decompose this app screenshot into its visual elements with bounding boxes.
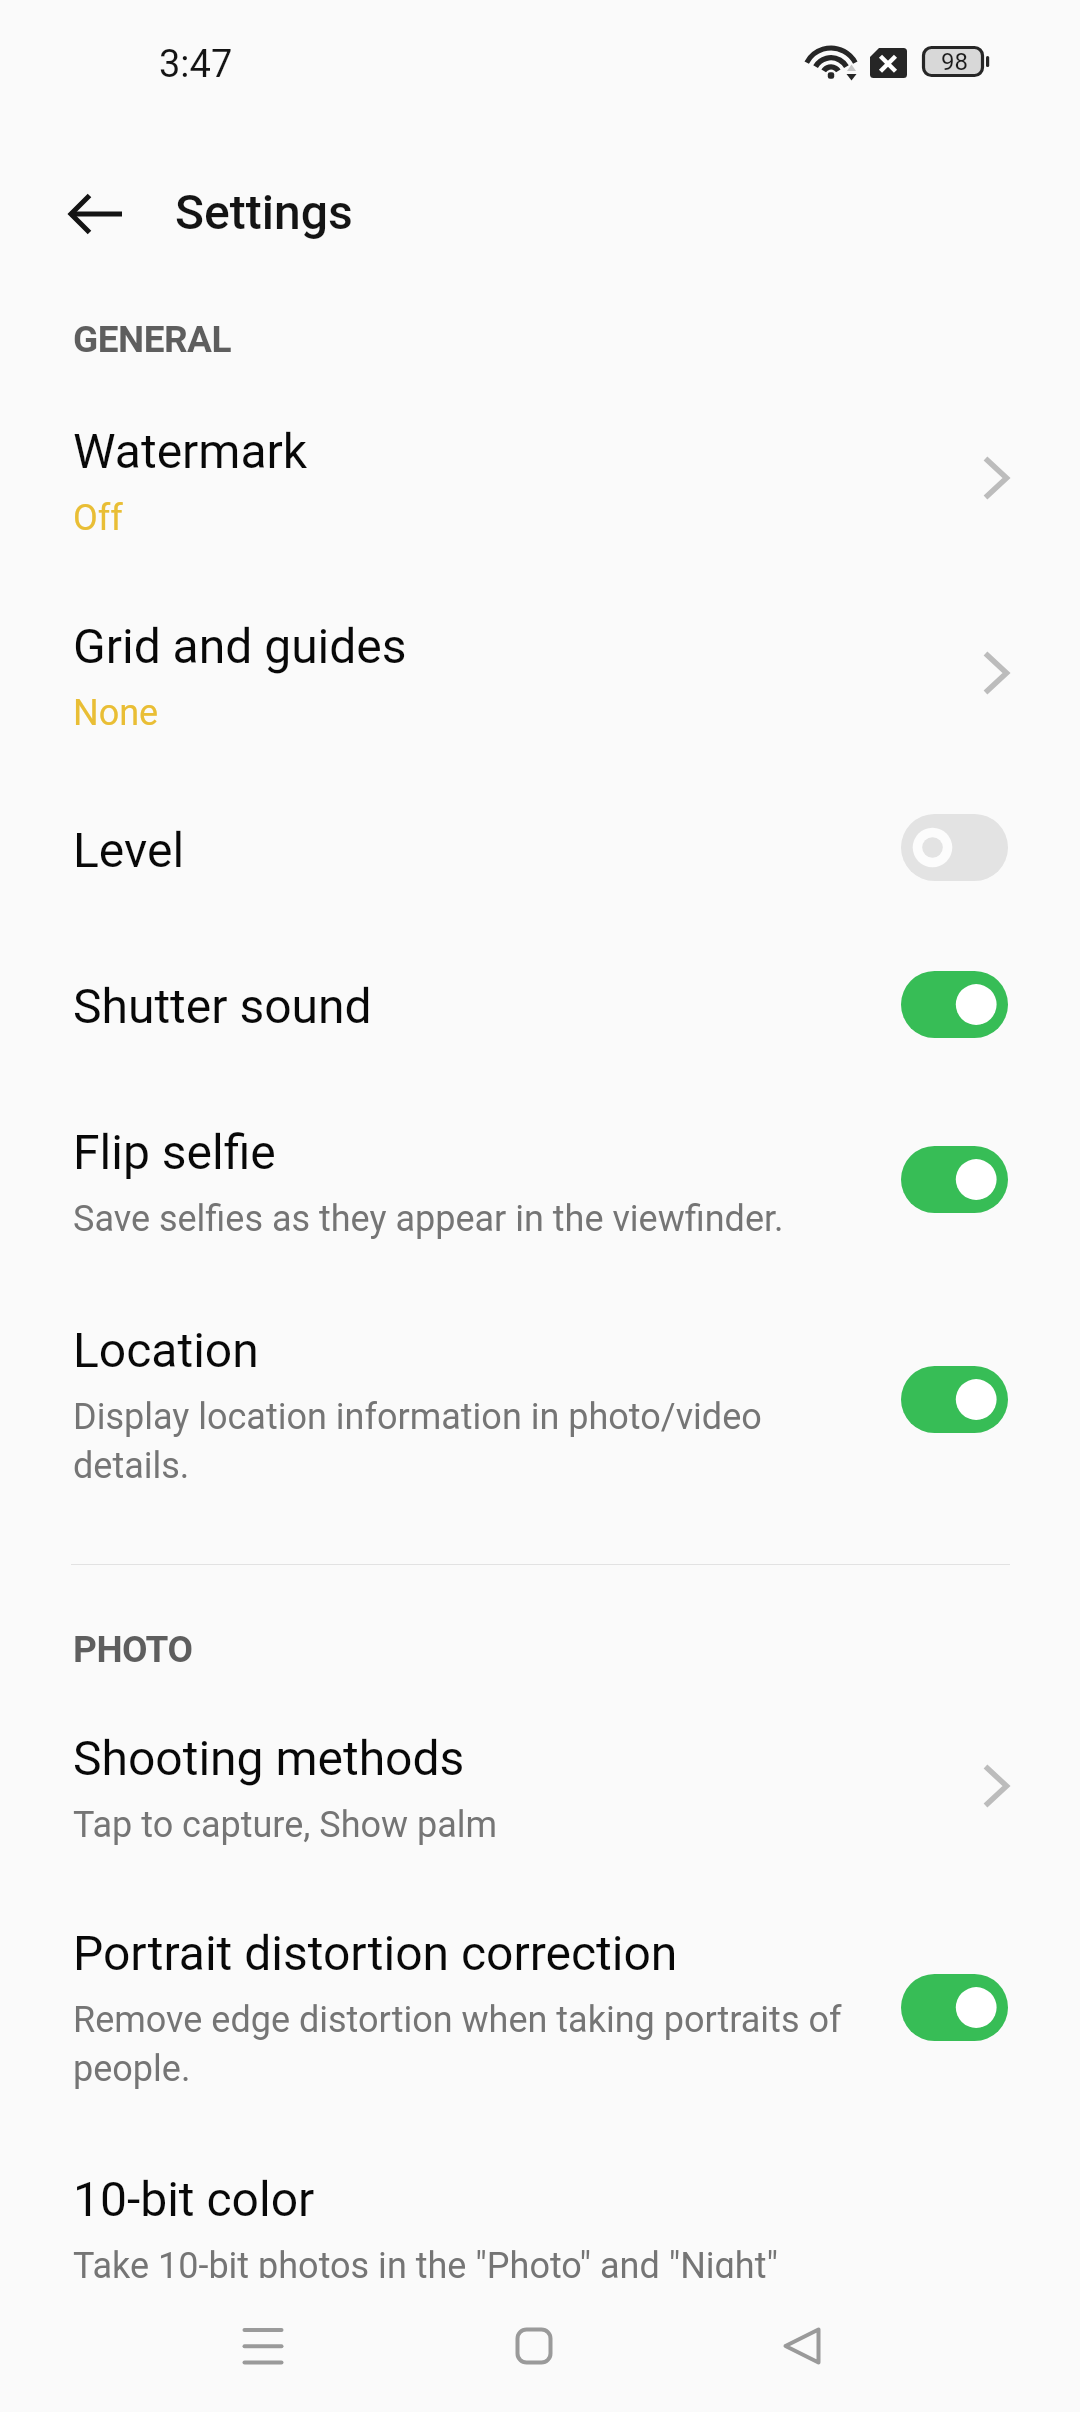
staticText: Portrait distortion correction (73, 1925, 678, 1981)
staticText: 10-bit color (73, 2171, 315, 2227)
button[interactable]: Open (966, 643, 1026, 703)
button[interactable]: On (901, 1974, 1008, 2041)
button[interactable]: Recents (203, 2296, 323, 2396)
staticText: Watermark (73, 423, 308, 479)
staticText: Off (73, 491, 123, 540)
button[interactable]: Home (474, 2296, 594, 2396)
button[interactable]: Level (0, 786, 1080, 898)
staticText: 98 (941, 48, 968, 76)
staticText: Take 10-bit photos in the "Photo" and "N… (73, 2239, 778, 2278)
button[interactable]: Grid and guides (0, 582, 1080, 740)
button[interactable]: Watermark (0, 387, 1080, 545)
staticText: Tap to capture, Show palm (73, 1798, 498, 1847)
staticText: Save selfies as they appear in the viewf… (73, 1192, 784, 1241)
staticText: Shutter sound (73, 978, 372, 1034)
button[interactable]: 10-bit color (0, 2135, 1080, 2278)
button[interactable]: Back (41, 158, 151, 268)
staticText: Grid and guides (73, 618, 407, 674)
button[interactable]: Off (901, 814, 1008, 881)
staticText: 3:47 (159, 42, 233, 87)
staticText: GENERAL (73, 318, 232, 361)
staticText: Flip selfie (73, 1124, 276, 1180)
staticText: Level (73, 822, 185, 878)
button[interactable]: Flip selfie (0, 1088, 1080, 1246)
staticText: Display location information in photo/vi… (73, 1390, 762, 1488)
button[interactable]: Open (966, 1756, 1026, 1816)
staticText: Settings (175, 184, 353, 240)
button[interactable]: Back (742, 2296, 862, 2396)
button[interactable]: On (901, 1146, 1008, 1213)
staticText: Location (73, 1322, 259, 1378)
button[interactable]: Portrait distortion correction (0, 1889, 1080, 2095)
button[interactable]: Open (966, 448, 1026, 508)
button[interactable]: Shooting methods (0, 1694, 1080, 1852)
button[interactable]: On (901, 1366, 1008, 1433)
staticText: Shooting methods (73, 1730, 465, 1786)
button[interactable]: Location (0, 1286, 1080, 1492)
staticText: PHOTO (73, 1628, 193, 1671)
button[interactable]: Shutter sound (0, 942, 1080, 1054)
staticText: Remove edge distortion when taking portr… (73, 1993, 842, 2091)
staticText: None (73, 686, 159, 735)
button[interactable]: On (901, 971, 1008, 1038)
